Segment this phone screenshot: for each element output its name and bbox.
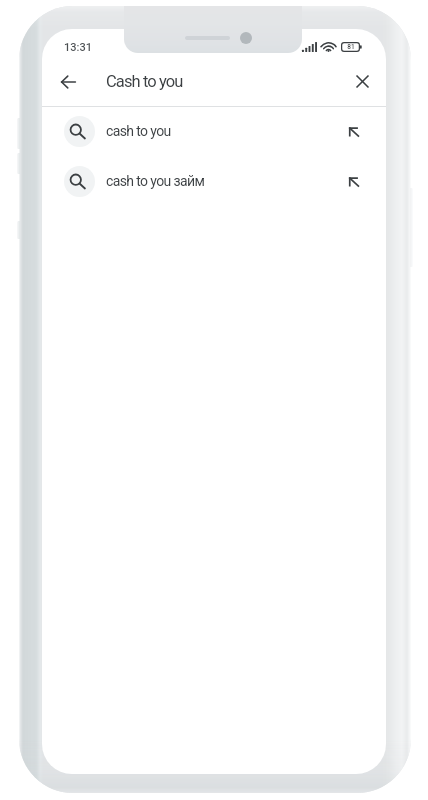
button[interactable]: Back: [48, 62, 88, 102]
button[interactable]: cash to you: [42, 106, 386, 156]
button[interactable]: Insert query: [338, 165, 370, 197]
staticText: 81: [347, 43, 355, 51]
staticText: cash to you: [106, 123, 171, 139]
button[interactable]: Insert query: [338, 115, 370, 147]
staticText: cash to you займ: [106, 173, 205, 189]
button[interactable]: cash to you займ: [42, 156, 386, 206]
staticText: Cash to you: [106, 72, 183, 91]
staticText: 13:31: [64, 41, 92, 54]
button[interactable]: Clear search: [342, 61, 382, 101]
